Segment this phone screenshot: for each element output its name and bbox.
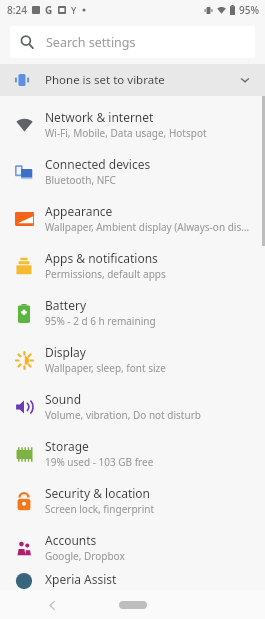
- button[interactable]: Home: [119, 601, 147, 609]
- staticText: Wallpaper, Ambient display (Always-on di…: [45, 220, 255, 234]
- staticText: Apps & notifications: [45, 250, 158, 266]
- button[interactable]: Back: [42, 595, 62, 615]
- button[interactable]: Xperia Assist: [0, 571, 265, 590]
- staticText: 19% used - 103 GB free: [45, 455, 154, 469]
- button[interactable]: Network & internet: [0, 101, 265, 148]
- staticText: Bluetooth, NFC: [45, 173, 116, 187]
- button[interactable]: Phone is set to vibrate: [0, 64, 265, 96]
- button[interactable]: Appearance: [0, 195, 265, 242]
- staticText: Accounts: [45, 532, 97, 548]
- button[interactable]: Apps & notifications: [0, 242, 265, 289]
- staticText: Xperia Assist: [45, 571, 117, 587]
- staticText: Google, Dropbox: [45, 549, 125, 563]
- button[interactable]: Search settings: [10, 26, 255, 58]
- staticText: Permissions, default apps: [45, 267, 166, 281]
- staticText: 8:24: [7, 3, 27, 17]
- button[interactable]: Security & location: [0, 477, 265, 524]
- staticText: Battery: [45, 297, 87, 313]
- staticText: Connected devices: [45, 156, 151, 172]
- staticText: G: [45, 3, 53, 17]
- button[interactable]: Storage: [0, 430, 265, 477]
- staticText: Wi-Fi, Mobile, Data usage, Hotspot: [45, 126, 207, 140]
- staticText: Y: [71, 4, 77, 16]
- staticText: Appearance: [45, 203, 113, 219]
- staticText: Sound: [45, 391, 82, 407]
- staticText: Search settings: [46, 34, 136, 51]
- button[interactable]: Accounts: [0, 524, 265, 571]
- staticText: Wallpaper, sleep, font size: [45, 361, 166, 375]
- button[interactable]: Display: [0, 336, 265, 383]
- staticText: Storage: [45, 438, 89, 454]
- staticText: 95%: [239, 3, 259, 17]
- staticText: Display: [45, 344, 86, 360]
- staticText: Volume, vibration, Do not disturb: [45, 408, 201, 422]
- staticText: 95% - 2 d 6 h remaining: [45, 314, 156, 328]
- staticText: Screen lock, fingerprint: [45, 502, 155, 516]
- staticText: Phone is set to vibrate: [45, 72, 165, 88]
- staticText: Security & location: [45, 485, 151, 501]
- button[interactable]: Sound: [0, 383, 265, 430]
- staticText: Network & internet: [45, 109, 154, 125]
- button[interactable]: Connected devices: [0, 148, 265, 195]
- button[interactable]: Battery: [0, 289, 265, 336]
